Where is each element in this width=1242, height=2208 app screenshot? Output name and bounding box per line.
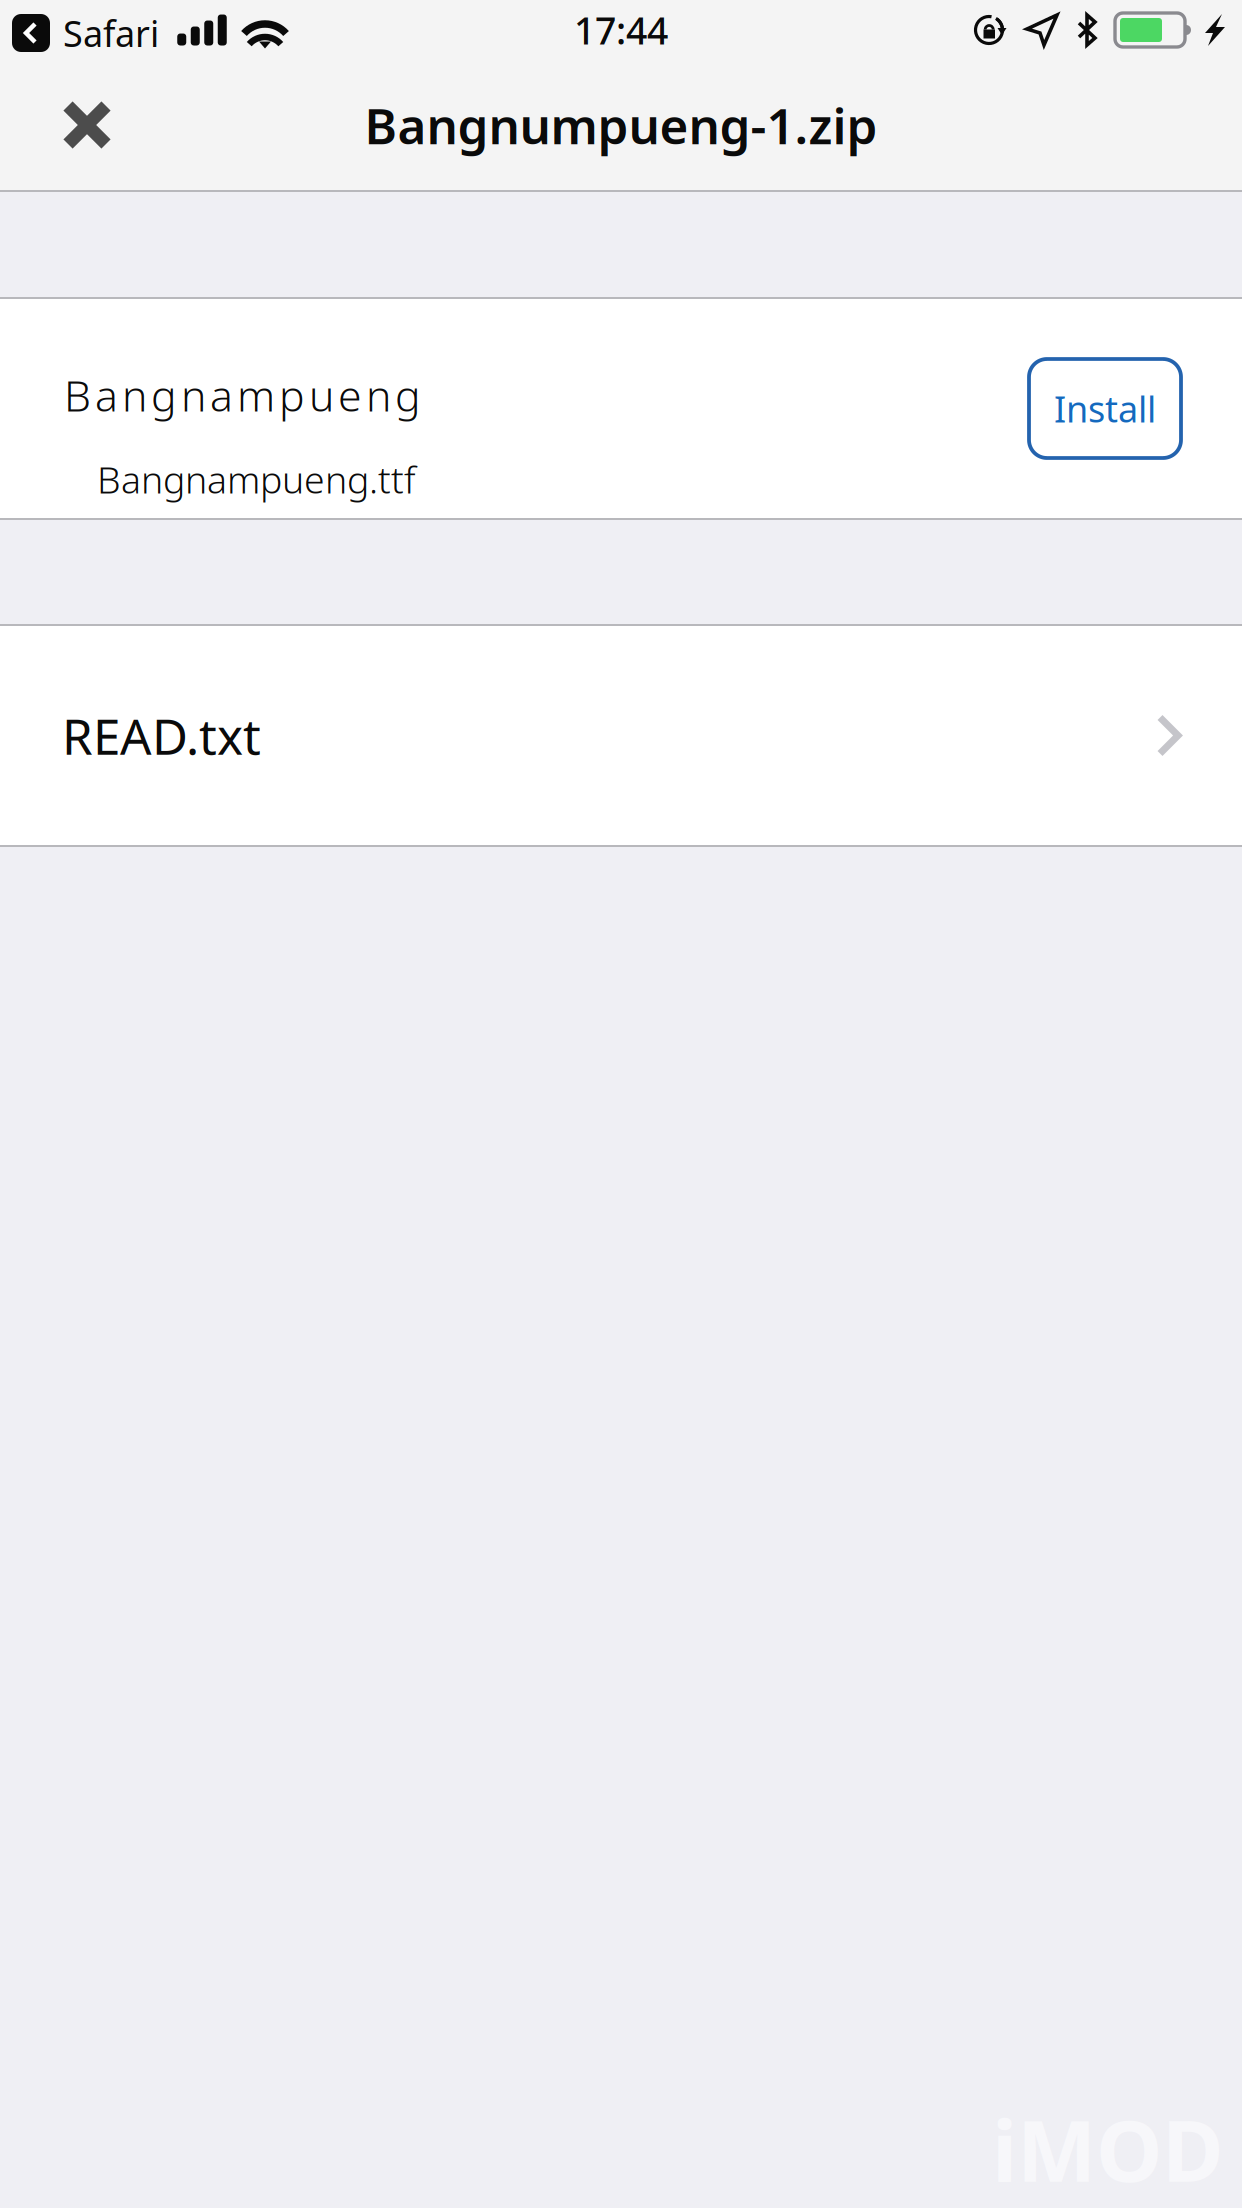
button[interactable]: READ.txt xyxy=(0,626,1242,845)
staticText: Bangnampueng.ttf xyxy=(97,454,416,504)
staticText: Safari xyxy=(63,9,159,57)
button[interactable]: Back to Safari xyxy=(12,0,159,65)
staticText: READ.txt xyxy=(62,703,261,768)
staticText: Bangnampueng xyxy=(64,367,421,423)
staticText: Bangnumpueng-1.zip xyxy=(364,92,877,158)
staticText: Install xyxy=(1054,385,1156,432)
staticText: 17:44 xyxy=(574,5,668,55)
button[interactable]: Close xyxy=(40,71,134,179)
button[interactable]: Install xyxy=(1029,359,1181,458)
staticText: iMOD xyxy=(992,2093,1223,2205)
